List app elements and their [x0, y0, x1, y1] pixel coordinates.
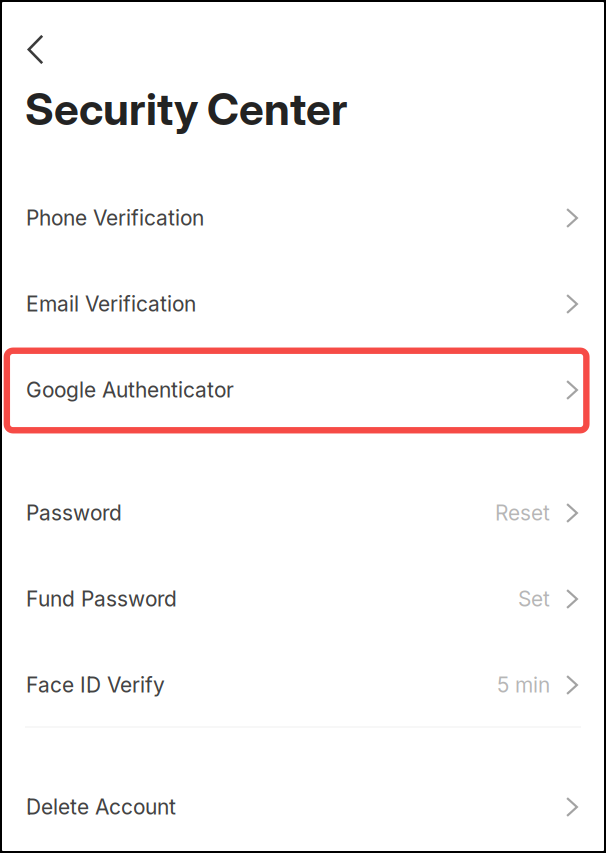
button[interactable]: Email Verification — [0, 261, 606, 347]
staticText: Set — [518, 586, 550, 612]
staticText: Phone Verification — [26, 205, 204, 231]
staticText: Security Center — [25, 82, 347, 136]
button[interactable]: Delete Account — [0, 764, 606, 850]
staticText: Delete Account — [26, 794, 176, 820]
button[interactable]: Back — [8, 22, 62, 76]
button[interactable]: Face ID Verify — [0, 642, 606, 728]
staticText: Fund Password — [26, 586, 177, 612]
button[interactable]: Password — [0, 470, 606, 556]
button[interactable]: Phone Verification — [0, 175, 606, 261]
staticText: Face ID Verify — [26, 672, 165, 698]
button[interactable]: Google Authenticator — [0, 347, 606, 433]
button[interactable]: Fund Password — [0, 556, 606, 642]
staticText: Reset — [495, 500, 550, 526]
staticText: Email Verification — [26, 291, 196, 317]
staticText: Password — [26, 500, 122, 526]
staticText: 5 min — [497, 672, 550, 698]
staticText: Google Authenticator — [26, 377, 234, 403]
